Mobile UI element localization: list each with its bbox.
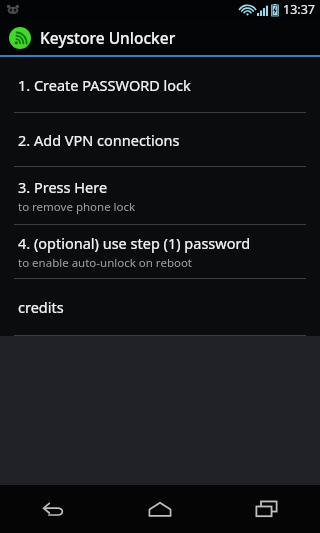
staticText: 4. (optional) use step (1) password: [18, 233, 251, 253]
button[interactable]: Back: [0, 485, 106, 533]
staticText: 3. Press Here: [18, 177, 108, 197]
staticText: credits: [18, 297, 64, 317]
button[interactable]: 1. Create PASSWORD lock: [0, 57, 320, 112]
button[interactable]: credits: [0, 279, 320, 335]
staticText: 13:37: [283, 1, 315, 18]
button[interactable]: Home: [106, 485, 213, 533]
staticText: 2. Add VPN connections: [18, 130, 180, 150]
button[interactable]: Recent apps: [213, 485, 320, 533]
staticText: to enable auto-unlock on reboot: [18, 255, 193, 271]
staticText: to remove phone lock: [18, 199, 136, 215]
staticText: 1. Create PASSWORD lock: [18, 75, 191, 95]
button[interactable]: 3. Press Here: [0, 167, 320, 224]
button[interactable]: 4. (optional) use step (1) password: [0, 225, 320, 278]
staticText: Keystore Unlocker: [40, 27, 176, 48]
button[interactable]: 2. Add VPN connections: [0, 113, 320, 166]
